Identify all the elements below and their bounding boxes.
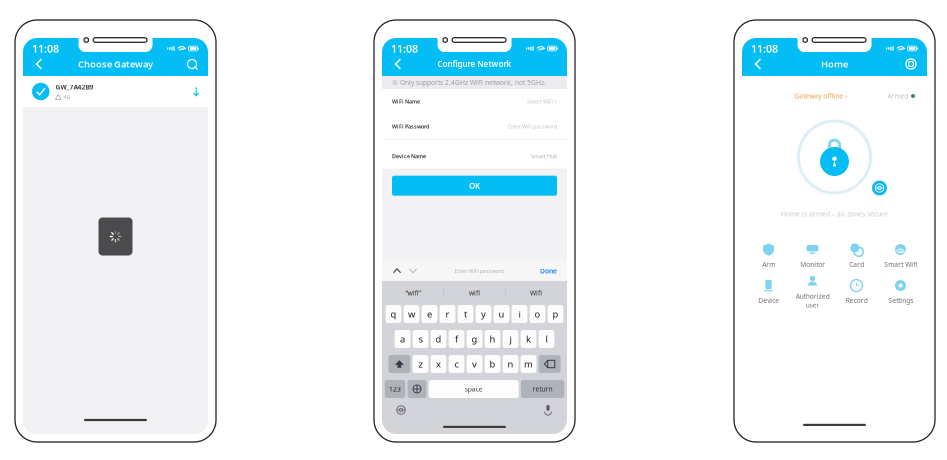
staticText: WiFi Password [392, 123, 429, 130]
staticText: 4G [64, 93, 71, 100]
staticText: m [524, 358, 533, 370]
staticText: 11:08 [391, 41, 418, 56]
staticText: n [507, 358, 513, 370]
staticText: x [436, 358, 441, 370]
staticText: Choose Gateway [78, 58, 153, 70]
button[interactable]: Record [834, 276, 878, 308]
staticText: Armed [887, 92, 908, 100]
staticText: f [455, 333, 458, 345]
button[interactable]: return [521, 380, 564, 398]
staticText: o [534, 308, 540, 320]
button[interactable]: Authorized user [790, 276, 834, 308]
staticText: 11:08 [751, 41, 778, 56]
staticText: Arm [762, 260, 775, 269]
staticText: v [472, 358, 477, 370]
button[interactable]: GW_7A42B9 [23, 76, 208, 107]
staticText: s [418, 333, 422, 345]
button[interactable]: OK [392, 176, 557, 196]
staticText: 123 [389, 385, 401, 393]
staticText: l [545, 333, 547, 345]
staticText: q [390, 308, 396, 320]
staticText: w [408, 308, 415, 320]
staticText: g [471, 333, 477, 345]
staticText: Select WiFi > [527, 98, 557, 105]
staticText: d [435, 333, 441, 345]
button[interactable]: Device [746, 276, 790, 308]
staticText: i [518, 308, 520, 320]
staticText: Wifi [530, 289, 542, 297]
staticText: t [464, 308, 467, 320]
button[interactable]: Back [748, 54, 768, 74]
button[interactable]: 123 [385, 380, 405, 398]
staticText: h [489, 333, 495, 345]
button[interactable]: Shift [388, 355, 410, 373]
staticText: Home [821, 58, 848, 70]
staticText: Card [849, 260, 864, 269]
staticText: wifi [469, 289, 480, 297]
staticText: Done [540, 267, 557, 275]
button[interactable]: WiFi Password [382, 114, 567, 139]
button[interactable]: Next field [405, 263, 421, 279]
button[interactable]: Smart Wifi [878, 240, 922, 272]
staticText: Smart Wifi [884, 260, 917, 269]
button[interactable]: Settings [878, 276, 922, 308]
staticText: a [400, 333, 405, 345]
button[interactable]: Delete [539, 355, 561, 373]
staticText: j [509, 333, 511, 345]
staticText: Enter WiFi password [508, 123, 557, 130]
staticText: c [454, 358, 458, 370]
staticText: z [418, 358, 422, 370]
button[interactable]: Device Name [382, 144, 567, 169]
button[interactable]: Previous field [389, 263, 405, 279]
staticText: 11:08 [32, 41, 59, 56]
staticText: Settings [888, 296, 913, 305]
staticText: y [481, 308, 486, 320]
staticText: Authorized user [795, 292, 829, 309]
button[interactable]: Done [537, 267, 560, 275]
button[interactable]: Switch keyboard [391, 400, 411, 420]
button[interactable]: Back [388, 54, 408, 74]
staticText: return [533, 385, 553, 393]
staticText: ① Only supports 2.4GHz WiFi network, not… [392, 78, 546, 87]
button[interactable]: Search [182, 54, 202, 74]
button[interactable]: Arm [746, 240, 790, 272]
staticText: space [465, 385, 483, 393]
staticText: Configure Network [437, 59, 511, 69]
staticText: e [427, 308, 432, 320]
staticText: Home is armed – all zones secure [781, 210, 888, 218]
staticText: p [552, 308, 558, 320]
staticText: Device Name [392, 153, 426, 160]
button[interactable]: space [429, 380, 519, 398]
staticText: Monitor [800, 260, 825, 269]
button[interactable]: Monitor [790, 240, 834, 272]
button[interactable]: Settings [901, 54, 921, 74]
staticText: r [445, 308, 449, 320]
button[interactable]: WiFi Name [382, 89, 567, 114]
staticText: Record [845, 296, 867, 305]
staticText: Device [758, 296, 779, 305]
staticText: GW_7A42B9 [55, 82, 93, 91]
button[interactable]: Emoji keyboard [407, 380, 426, 398]
staticText: Gateway offline › [794, 92, 847, 100]
staticText: k [526, 333, 531, 345]
staticText: WiFi Name [392, 98, 420, 105]
staticText: Smart Hub [531, 153, 557, 160]
staticText: OK [469, 180, 480, 191]
staticText: “wifi” [405, 289, 420, 297]
staticText: u [498, 308, 504, 320]
button[interactable]: Back [29, 54, 49, 74]
staticText: b [489, 358, 495, 370]
staticText: Enter WiFi password [454, 267, 503, 275]
button[interactable]: Dictate [538, 400, 558, 420]
button[interactable]: Card [834, 240, 878, 272]
